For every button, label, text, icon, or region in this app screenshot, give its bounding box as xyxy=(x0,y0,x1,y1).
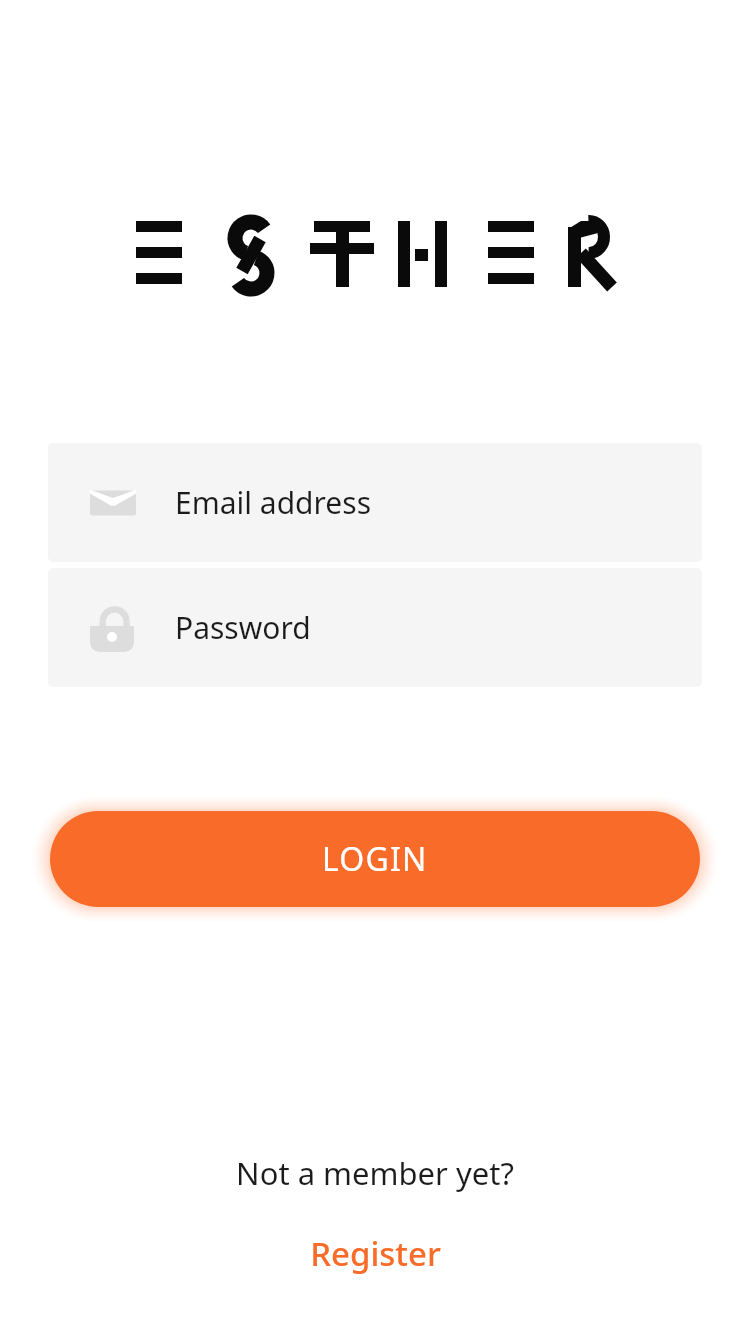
staticText: Not a member yet? xyxy=(236,1152,514,1194)
button[interactable]: Password xyxy=(48,568,702,687)
button[interactable]: Not a member yet? xyxy=(0,1152,750,1194)
button[interactable]: LOGIN xyxy=(50,811,700,907)
other: Email address xyxy=(90,484,136,522)
button[interactable]: Email address xyxy=(48,443,702,562)
other: Password xyxy=(90,604,134,652)
staticText: Password xyxy=(175,607,311,648)
button[interactable]: Register xyxy=(0,1231,750,1276)
staticText: LOGIN xyxy=(322,837,428,881)
staticText: Register xyxy=(310,1231,441,1276)
staticText: Email address xyxy=(175,482,372,523)
